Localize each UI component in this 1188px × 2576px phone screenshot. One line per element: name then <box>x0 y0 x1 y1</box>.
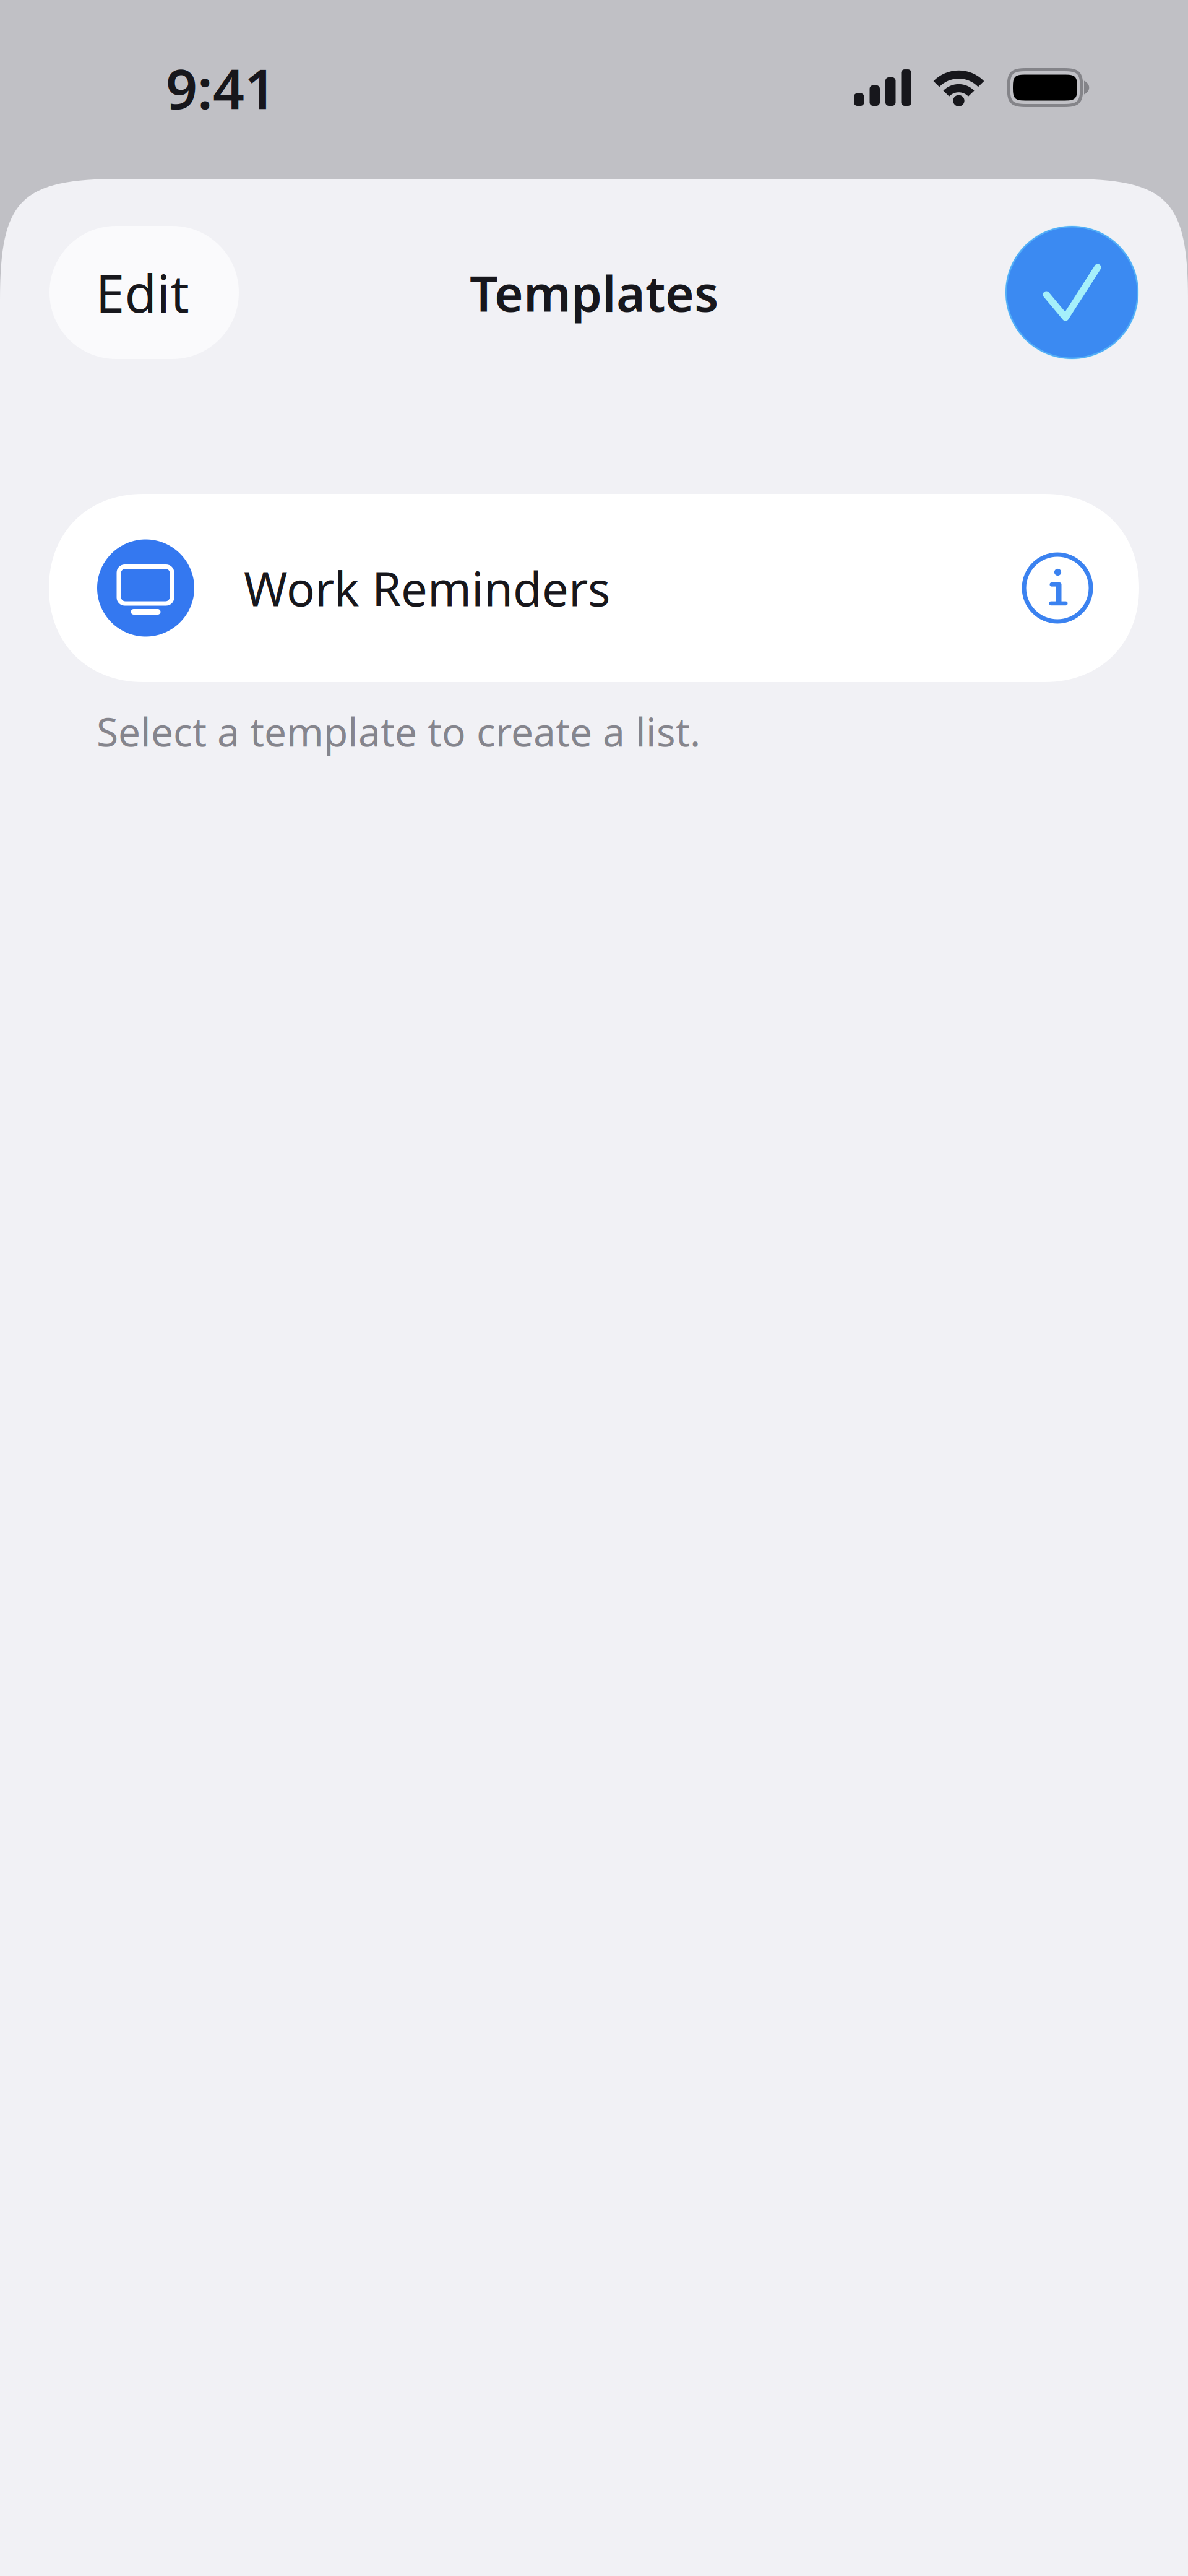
button[interactable]: Done <box>1005 226 1138 359</box>
staticText: Select a template to create a list. <box>97 705 700 758</box>
staticText: Edit <box>96 258 189 327</box>
button[interactable]: Edit <box>49 226 239 359</box>
button[interactable]: Work Reminders <box>49 494 1139 682</box>
staticText: Templates <box>470 260 718 325</box>
staticText: 9:41 <box>166 51 276 124</box>
staticText: Work Reminders <box>244 557 610 619</box>
